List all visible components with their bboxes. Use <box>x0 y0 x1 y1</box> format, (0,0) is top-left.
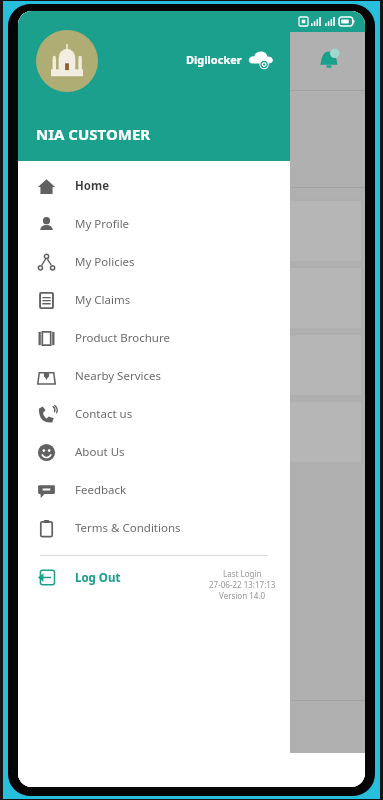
staticText: Last Login <box>223 568 262 579</box>
staticText: NIA CUSTOMER <box>36 124 151 144</box>
staticText: My Policies <box>75 254 135 270</box>
button[interactable]: Contact <box>18 701 365 753</box>
staticText: Home <box>75 178 110 194</box>
button[interactable]: Feedback <box>18 471 290 509</box>
staticText: Log Out <box>75 570 121 586</box>
staticText: Quick Renew/Pay <box>160 158 218 187</box>
button[interactable]: Log Out <box>18 568 121 587</box>
button[interactable]: Terms & Conditions <box>18 509 290 547</box>
button[interactable]: About Us <box>18 433 290 471</box>
button[interactable]: Nearby Services <box>18 357 290 395</box>
button[interactable] <box>20 333 363 397</box>
staticText: 27-06-22 13:17:13 <box>209 579 276 590</box>
button[interactable]: My Claims <box>18 281 290 319</box>
staticText: Contact us <box>75 406 133 422</box>
staticText: Feedback <box>75 482 127 498</box>
staticText: About Us <box>75 444 125 460</box>
staticText: Digilocker <box>186 52 242 67</box>
button[interactable]: Contact us <box>18 395 290 433</box>
button[interactable] <box>20 400 363 464</box>
button[interactable]: My Policies <box>18 243 290 281</box>
button[interactable]: Product Brochure <box>18 319 290 357</box>
button[interactable] <box>20 199 363 263</box>
staticText: Product Brochure <box>75 330 170 346</box>
staticText: Version 14.0 <box>219 590 266 601</box>
staticText: Terms & Conditions <box>75 520 181 536</box>
staticText: Nearby Services <box>75 368 161 384</box>
button[interactable]: Digilocker <box>186 49 274 69</box>
button[interactable]: Home <box>18 167 290 205</box>
button[interactable]: My Profile <box>18 205 290 243</box>
button[interactable]: Notifications <box>315 47 343 75</box>
staticText: My Claims <box>75 292 131 308</box>
button[interactable] <box>20 266 363 330</box>
staticText: My Profile <box>75 216 130 232</box>
